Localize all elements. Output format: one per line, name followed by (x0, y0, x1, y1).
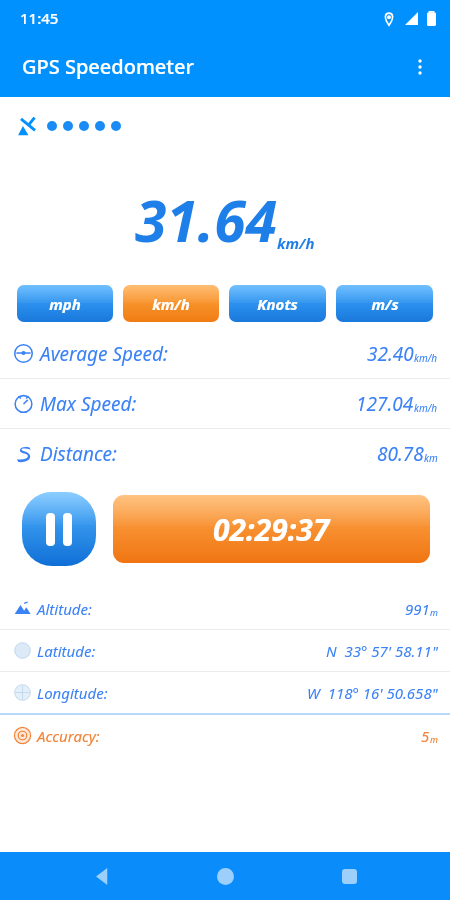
staticText: 11:45 (20, 8, 59, 28)
staticText: mph (49, 294, 81, 314)
button[interactable]: Back (80, 854, 124, 898)
staticText: Average Speed: (40, 341, 168, 367)
button[interactable]: Max Speed: (0, 379, 450, 428)
staticText: km (424, 451, 438, 465)
button[interactable]: km/h (123, 285, 219, 322)
staticText: 32.40 (367, 341, 414, 367)
button[interactable]: Pause (22, 492, 96, 566)
staticText: m (430, 606, 438, 618)
button[interactable]: m/s (336, 285, 433, 322)
staticText: 80.78 (377, 441, 424, 467)
staticText: Distance: (40, 441, 117, 467)
staticText: 02:29:37 (213, 509, 330, 550)
staticText: N 33° 57' 58.11" (326, 641, 438, 661)
staticText: 991 (405, 599, 430, 619)
staticText: Latitude: (37, 641, 96, 661)
staticText: km/h (152, 294, 190, 314)
staticText: Longitude: (37, 683, 108, 703)
staticText: m/s (371, 294, 399, 314)
staticText: 31.64 (135, 181, 277, 259)
button[interactable]: Recents (327, 854, 371, 898)
button[interactable]: Accuracy: (0, 715, 450, 756)
staticText: km/h (414, 401, 438, 415)
button[interactable]: More options (398, 45, 442, 89)
staticText: km/h (414, 351, 438, 365)
staticText: Knots (257, 294, 298, 314)
staticText: m (430, 733, 438, 745)
staticText: GPS Speedometer (22, 53, 194, 80)
button[interactable]: mph (17, 285, 113, 322)
staticText: 127.04 (356, 391, 414, 417)
staticText: Max Speed: (40, 391, 137, 417)
button[interactable]: Latitude: (0, 630, 450, 671)
staticText: km/h (277, 233, 315, 253)
staticText: W 118° 16' 50.658" (307, 683, 438, 703)
button[interactable]: 02:29:37 (113, 495, 430, 563)
button[interactable]: Average Speed: (0, 329, 450, 378)
staticText: Accuracy: (37, 726, 100, 746)
button[interactable]: Home (203, 854, 247, 898)
button[interactable]: Altitude: (0, 588, 450, 629)
staticText: 5 (421, 726, 430, 746)
button[interactable]: Distance: (0, 429, 450, 478)
button[interactable]: Knots (229, 285, 326, 322)
button[interactable]: Longitude: (0, 672, 450, 713)
staticText: Altitude: (37, 599, 92, 619)
